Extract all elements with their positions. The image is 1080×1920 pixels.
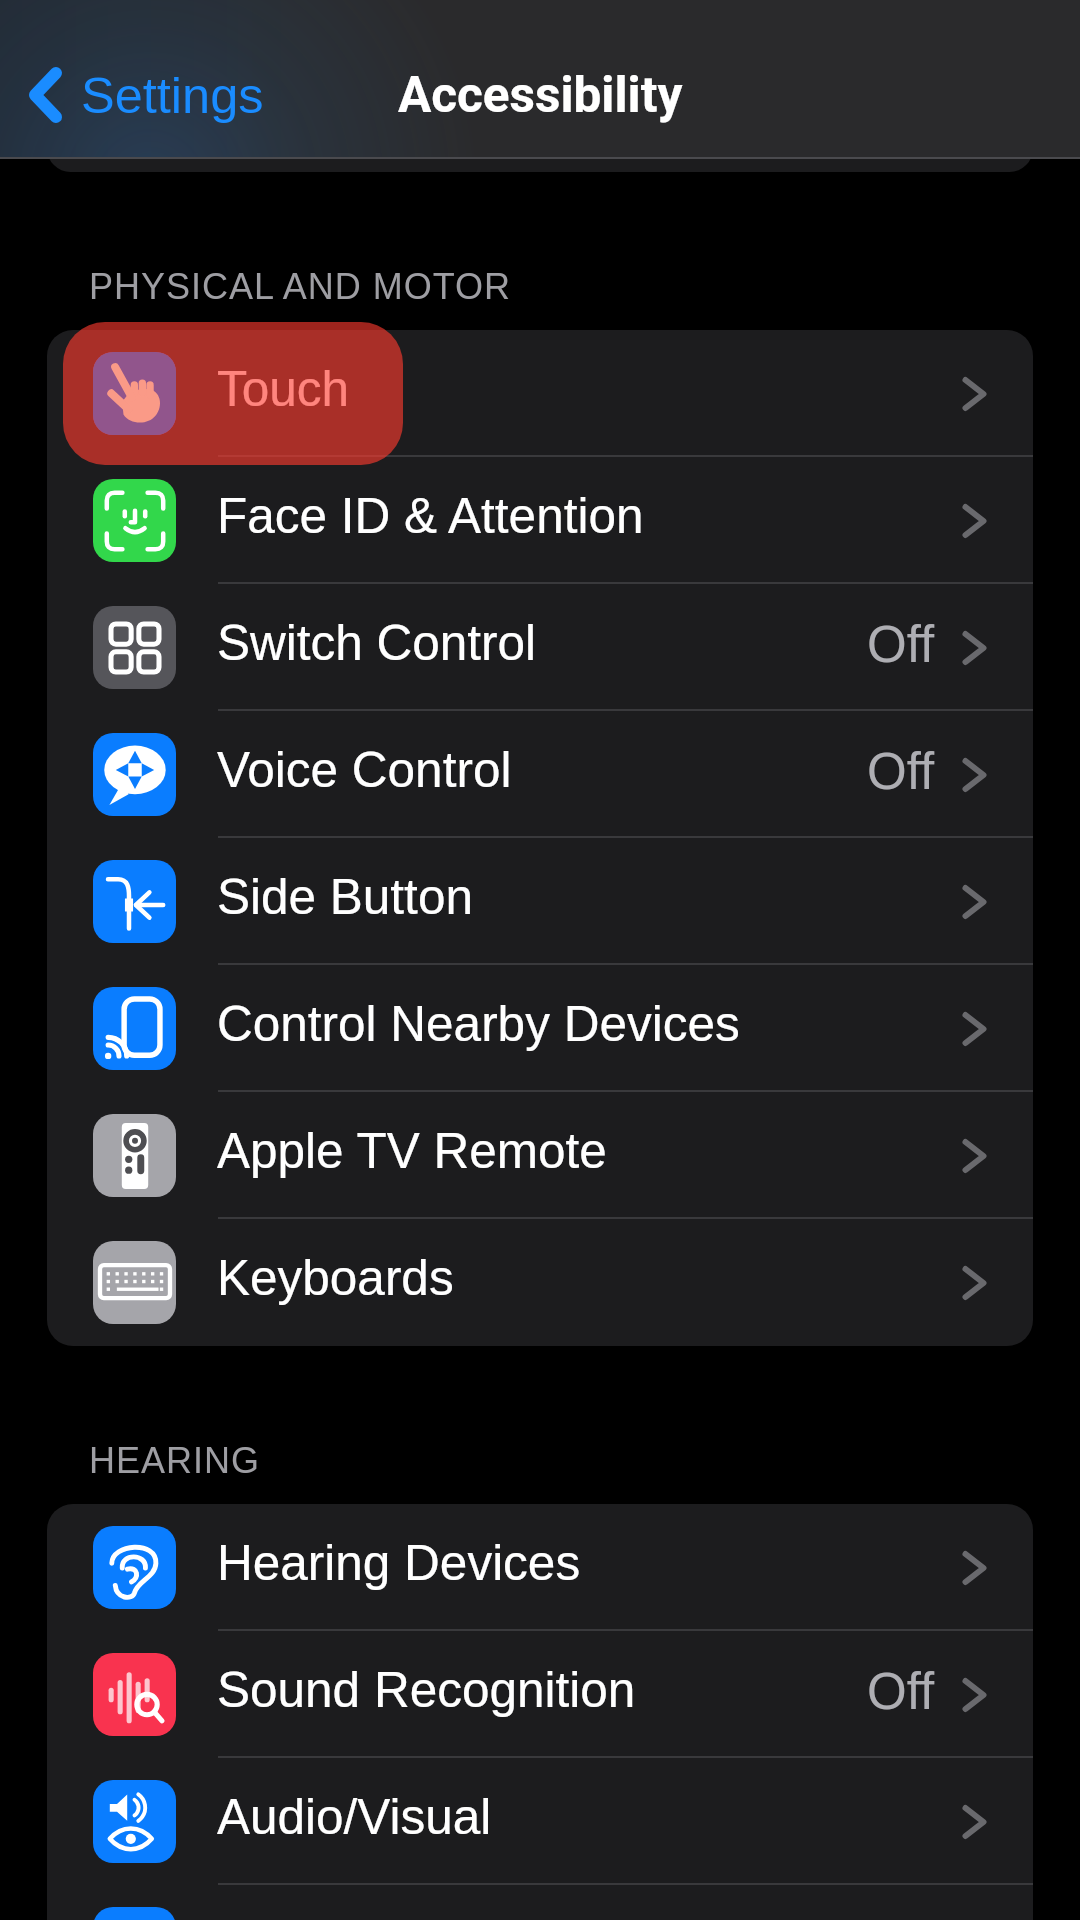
staticText: Sound Recognition bbox=[217, 1662, 636, 1717]
staticText: HEARING bbox=[89, 1440, 261, 1480]
button[interactable]: Audio/Visual bbox=[47, 1758, 1033, 1885]
button[interactable]: Keyboards bbox=[47, 1219, 1033, 1346]
staticText: Off bbox=[867, 1663, 935, 1720]
staticText: Off bbox=[867, 743, 935, 800]
staticText: Control Nearby Devices bbox=[217, 996, 740, 1051]
staticText: Side Button bbox=[217, 869, 473, 924]
staticText: Keyboards bbox=[217, 1250, 454, 1305]
staticText: Switch Control bbox=[217, 615, 537, 670]
staticText: Apple TV Remote bbox=[217, 1123, 607, 1178]
button[interactable]: Touch bbox=[47, 330, 1033, 457]
button[interactable]: Subtitles & Captioning bbox=[47, 1885, 1033, 1920]
staticText: Audio/Visual bbox=[217, 1789, 492, 1844]
button[interactable]: Control Nearby Devices bbox=[47, 965, 1033, 1092]
staticText: Touch bbox=[217, 361, 350, 416]
button[interactable]: Side Button bbox=[47, 838, 1033, 965]
button[interactable]: Hearing Devices bbox=[47, 1504, 1033, 1631]
staticText: PHYSICAL AND MOTOR bbox=[89, 266, 512, 306]
staticText: Hearing Devices bbox=[217, 1535, 581, 1590]
staticText: Face ID & Attention bbox=[217, 488, 644, 543]
button[interactable]: Sound Recognition bbox=[47, 1631, 1033, 1758]
button[interactable]: Switch Control bbox=[47, 584, 1033, 711]
button[interactable]: Voice Control bbox=[47, 711, 1033, 838]
staticText: Voice Control bbox=[217, 742, 512, 797]
staticText: Settings bbox=[81, 67, 264, 123]
staticText: Accessibility bbox=[398, 66, 683, 124]
button[interactable]: Apple TV Remote bbox=[47, 1092, 1033, 1219]
button[interactable]: Back to Settings bbox=[0, 53, 284, 137]
button[interactable]: Face ID & Attention bbox=[47, 457, 1033, 584]
staticText: Off bbox=[867, 616, 935, 673]
